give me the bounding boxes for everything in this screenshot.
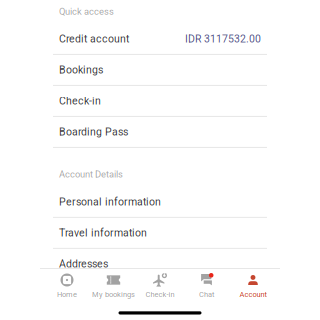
button[interactable]: Chat bbox=[183, 273, 230, 299]
staticText: Check-in bbox=[59, 95, 101, 107]
button[interactable]: Check-in bbox=[53, 86, 267, 116]
staticText: Personal information bbox=[59, 196, 161, 208]
staticText: Boarding Pass bbox=[59, 126, 128, 138]
staticText: Addresses bbox=[59, 258, 108, 270]
button[interactable]: Account bbox=[230, 273, 276, 299]
staticText: IDR 3117532.00 bbox=[185, 33, 261, 45]
button[interactable]: Boarding Pass bbox=[53, 117, 267, 147]
staticText: Travel information bbox=[59, 227, 147, 239]
button[interactable]: Check-in bbox=[137, 273, 183, 299]
staticText: Bookings bbox=[59, 64, 103, 76]
staticText: Account bbox=[239, 290, 266, 299]
staticText: Credit account bbox=[59, 33, 129, 45]
button[interactable]: Travel information bbox=[53, 218, 267, 248]
button[interactable]: Credit account bbox=[53, 24, 267, 54]
button[interactable]: Home bbox=[44, 273, 90, 299]
staticText: Quick access bbox=[59, 6, 114, 17]
button[interactable]: Personal information bbox=[53, 187, 267, 217]
button[interactable]: My bookings bbox=[90, 273, 137, 299]
button[interactable]: Bookings bbox=[53, 55, 267, 85]
button[interactable]: Addresses bbox=[53, 249, 267, 279]
staticText: Account Details bbox=[59, 169, 123, 180]
staticText: Check-in bbox=[145, 290, 174, 299]
staticText: My bookings bbox=[92, 290, 135, 299]
staticText: Home bbox=[57, 290, 77, 299]
staticText: Chat bbox=[199, 290, 214, 299]
